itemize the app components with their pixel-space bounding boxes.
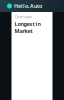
staticText: Hello, Auto <box>14 2 42 10</box>
staticText: Overview <box>14 14 31 19</box>
staticText: Longest in Market <box>14 20 40 34</box>
